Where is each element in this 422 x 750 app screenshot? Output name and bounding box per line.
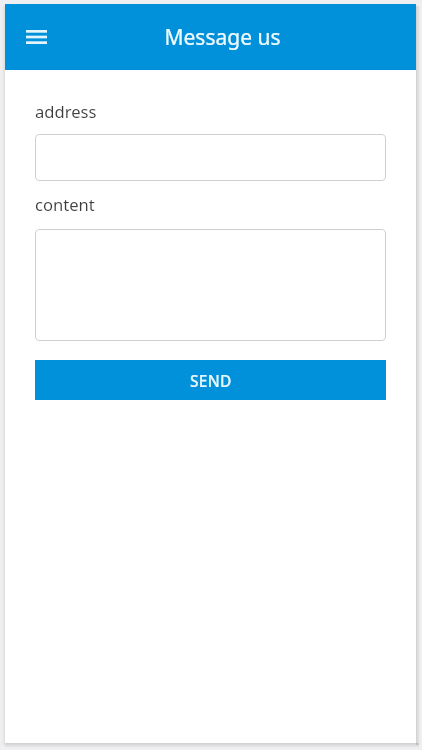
- staticText: address: [35, 100, 97, 123]
- staticText: content: [35, 193, 95, 216]
- button[interactable]: SEND: [35, 360, 386, 400]
- button[interactable]: content input: [35, 229, 386, 341]
- button[interactable]: address input: [35, 134, 386, 181]
- staticText: SEND: [190, 370, 232, 391]
- button[interactable]: Open navigation menu: [14, 15, 58, 59]
- staticText: Message us: [164, 23, 281, 52]
